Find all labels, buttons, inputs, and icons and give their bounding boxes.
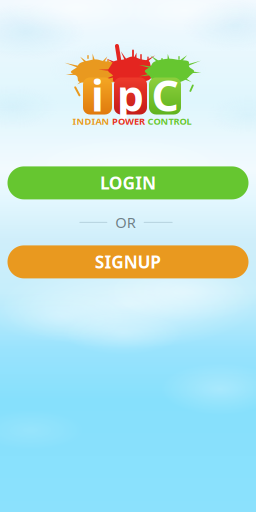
staticText: INDIAN [72,115,109,127]
staticText: OR [115,213,136,232]
staticText: p [117,67,144,123]
staticText: CONTROL [147,115,191,127]
staticText: POWER [112,115,145,127]
staticText: C [151,67,178,123]
button[interactable]: SIGNUP [7,245,248,278]
staticText: i [91,67,104,123]
staticText: LOGIN [100,171,156,194]
button[interactable]: LOGIN [7,166,248,199]
staticText: SIGNUP [95,250,161,273]
